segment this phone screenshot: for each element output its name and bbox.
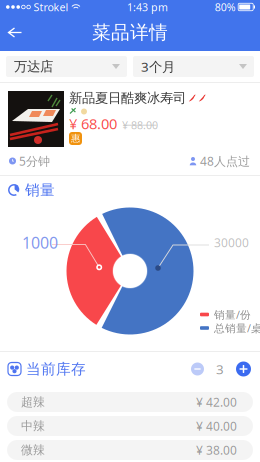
- staticText: 惠: [71, 133, 80, 144]
- staticText: 万达店: [14, 58, 53, 75]
- staticText: ¥ 42.00: [196, 394, 237, 410]
- staticText: 菜品详情: [92, 21, 168, 44]
- button[interactable]: Increase stock: [236, 361, 251, 376]
- staticText: 80%: [215, 0, 236, 14]
- staticText: 1000: [22, 232, 58, 253]
- staticText: 超辣: [21, 395, 45, 409]
- staticText: ¥ 40.00: [196, 418, 237, 434]
- staticText: 3: [216, 360, 224, 378]
- button[interactable]: Back: [0, 14, 32, 51]
- staticText: 销量/份: [214, 307, 251, 322]
- staticText: 48人点过: [197, 153, 250, 169]
- staticText: 微辣: [21, 443, 45, 457]
- button[interactable]: 超辣: [7, 392, 253, 412]
- staticText: 30000: [214, 234, 249, 250]
- staticText: 新品夏日酷爽冰寿司: [69, 90, 186, 106]
- staticText: 总销量/桌: [214, 321, 260, 335]
- button[interactable]: 中辣: [7, 416, 253, 436]
- staticText: 1:43 pm: [127, 0, 168, 14]
- staticText: ¥ 88.00: [122, 118, 158, 132]
- button[interactable]: 3个月: [133, 56, 254, 77]
- staticText: Strokel: [30, 0, 68, 14]
- staticText: 5分钟: [16, 153, 50, 169]
- staticText: 中辣: [21, 419, 45, 433]
- staticText: ¥ 38.00: [196, 442, 237, 458]
- staticText: ¥ 68.00: [69, 114, 117, 133]
- staticText: 3个月: [141, 58, 175, 75]
- staticText: 当前库存: [26, 360, 86, 378]
- staticText: 销量: [25, 181, 55, 199]
- button[interactable]: Decrease stock: [191, 362, 204, 375]
- button[interactable]: 万达店: [6, 56, 127, 77]
- button[interactable]: 微辣: [7, 440, 253, 460]
